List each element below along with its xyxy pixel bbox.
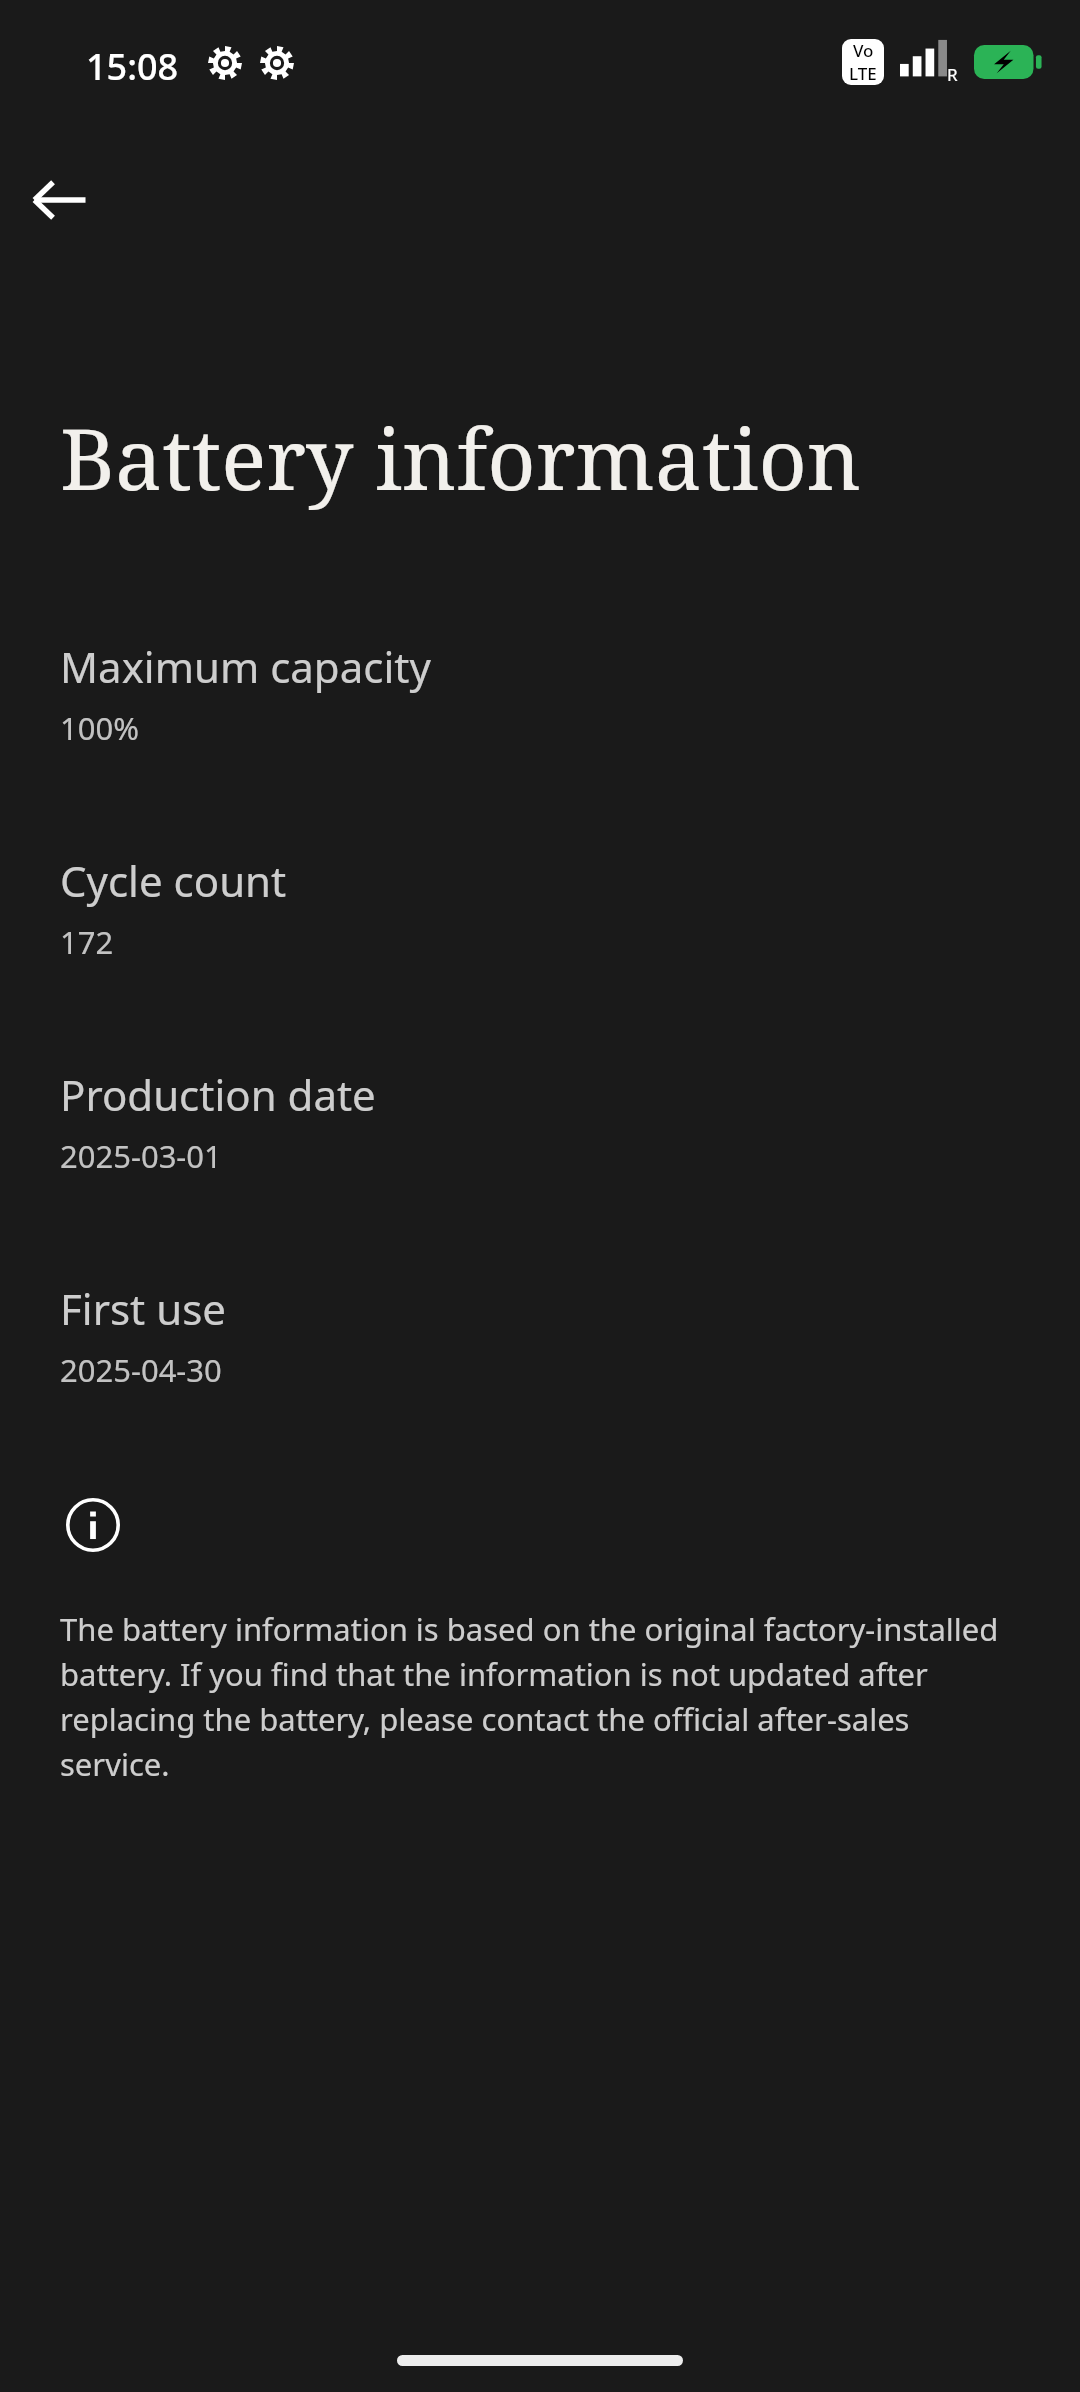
staticText: Vo [853,39,874,62]
staticText: Cycle count [60,852,287,909]
button[interactable]: Back [20,160,100,240]
staticText: Production date [60,1066,376,1123]
staticText: LTE [849,62,877,85]
staticText: 172 [60,921,114,963]
staticText: Battery information [60,400,862,514]
staticText: Maximum capacity [60,638,431,695]
staticText: The battery information is based on the … [60,1608,1020,1785]
other: Information [62,1494,124,1556]
staticText: 100% [60,707,139,749]
staticText: 2025-04-30 [60,1349,222,1391]
staticText: R [947,63,958,86]
staticText: 2025-03-01 [60,1135,222,1177]
staticText: 15:08 [86,42,179,91]
staticText: First use [60,1280,226,1337]
